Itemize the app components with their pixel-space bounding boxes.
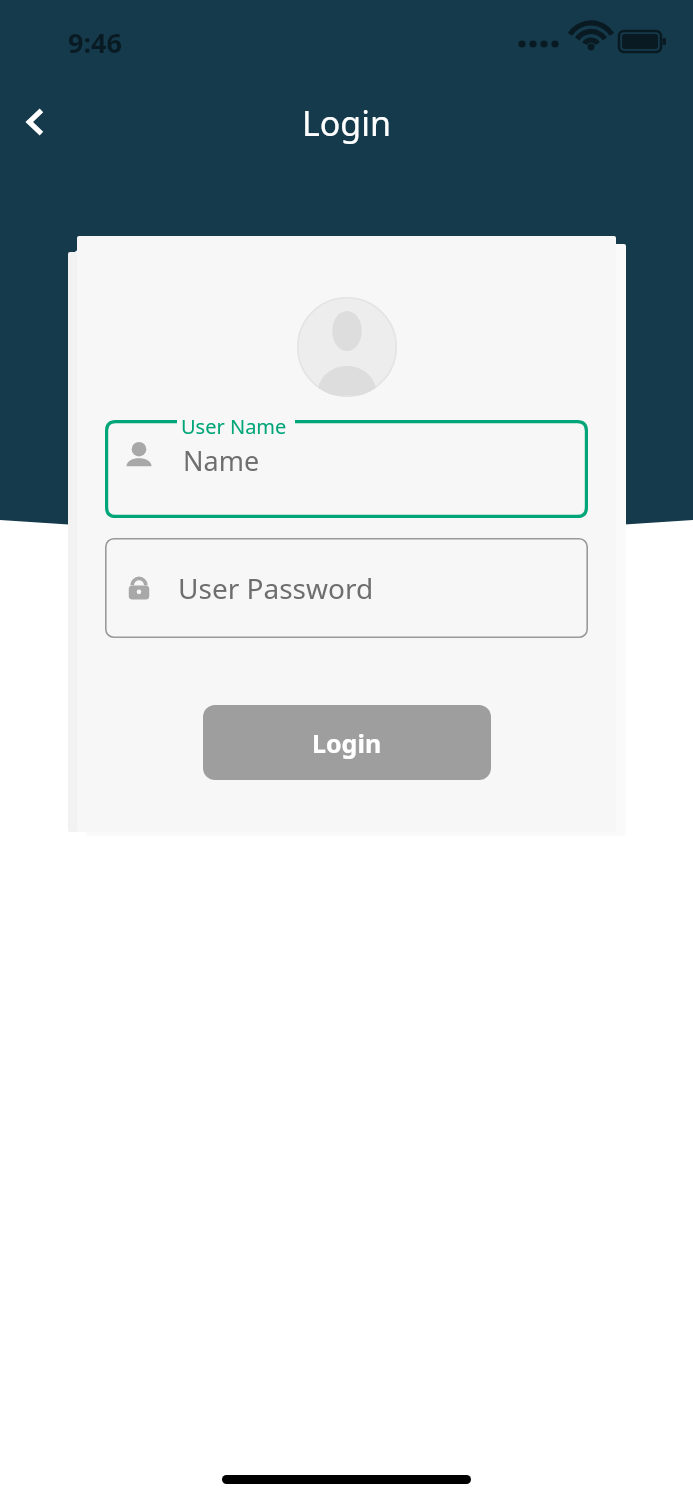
staticText: Login — [0, 100, 693, 146]
button[interactable]: Name — [105, 420, 588, 518]
staticText: User Password — [178, 569, 374, 607]
button[interactable]: Login — [203, 705, 491, 780]
staticText: Login — [312, 726, 382, 760]
button[interactable]: Back — [6, 92, 66, 152]
staticText: User Name — [181, 413, 287, 440]
button[interactable]: User Password — [105, 538, 588, 638]
staticText: 9:46 — [68, 24, 122, 61]
staticText: Name — [183, 442, 260, 479]
